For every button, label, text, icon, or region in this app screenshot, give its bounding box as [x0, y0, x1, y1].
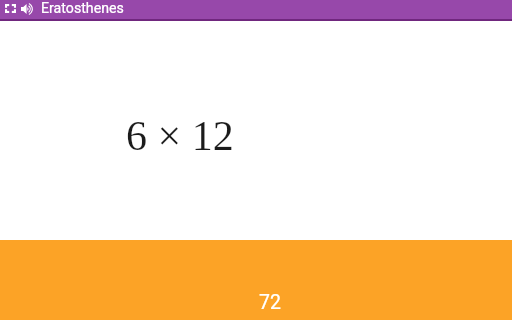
- button[interactable]: Mute sound: [20, 2, 36, 15]
- staticText: 6 × 12: [126, 113, 234, 160]
- button[interactable]: 6 × 12: [0, 21, 512, 240]
- staticText: Eratosthenes: [41, 0, 124, 17]
- staticText: 72: [259, 291, 281, 314]
- button[interactable]: 72: [0, 240, 512, 320]
- button[interactable]: Toggle full screen: [3, 2, 18, 15]
